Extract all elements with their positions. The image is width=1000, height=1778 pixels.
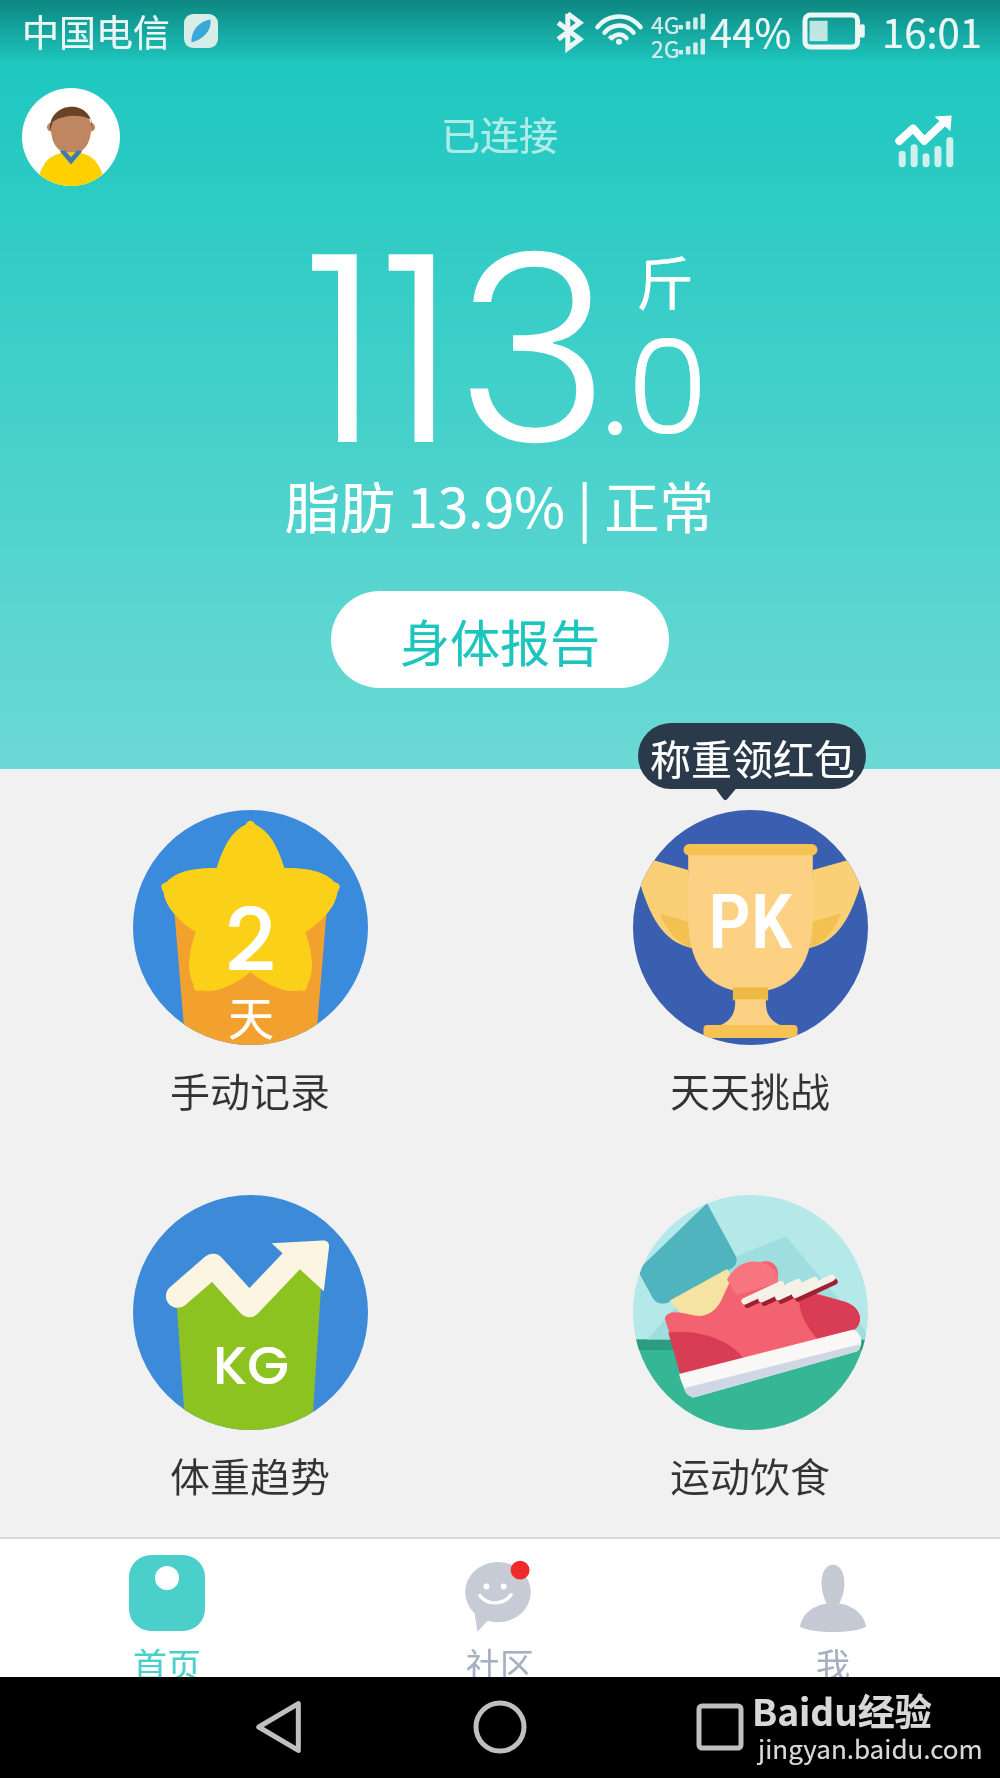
button[interactable]: Home bbox=[450, 1677, 550, 1777]
button[interactable]: Recents bbox=[670, 1677, 770, 1777]
button[interactable]: Profile bbox=[22, 88, 120, 186]
staticText: 2 bbox=[225, 879, 276, 1002]
staticText: 斤 bbox=[636, 238, 695, 322]
button[interactable]: 身体报告 bbox=[331, 591, 669, 688]
staticText: 天天挑战 bbox=[670, 1061, 830, 1119]
staticText: 身体报告 bbox=[400, 604, 600, 676]
staticText: 16:01 bbox=[882, 2, 982, 60]
button[interactable]: 首页 bbox=[57, 1539, 277, 1677]
staticText: 运动饮食 bbox=[670, 1446, 830, 1504]
button[interactable]: 我 bbox=[723, 1539, 943, 1677]
staticText: 称重领红包 bbox=[650, 727, 855, 786]
staticText: PK bbox=[708, 877, 793, 966]
button[interactable]: PK bbox=[628, 810, 872, 1119]
staticText: 4G bbox=[651, 7, 680, 40]
staticText: 首页 bbox=[133, 1639, 201, 1688]
button[interactable]: 社区 bbox=[390, 1539, 610, 1677]
staticText: 社区 bbox=[466, 1639, 534, 1688]
button[interactable]: 称重领红包 bbox=[638, 723, 866, 789]
staticText: 113 bbox=[304, 167, 611, 534]
button[interactable]: Back bbox=[229, 1677, 329, 1777]
staticText: 天 bbox=[228, 982, 274, 1045]
staticText: 44% bbox=[710, 2, 792, 60]
staticText: 2G bbox=[651, 31, 680, 64]
staticText: 手动记录 bbox=[170, 1061, 330, 1119]
staticText: .0 bbox=[603, 295, 709, 480]
staticText: 我 bbox=[816, 1639, 850, 1688]
staticText: 脂肪 13.9% | 正常 bbox=[285, 464, 715, 544]
button[interactable]: KG bbox=[128, 1195, 372, 1504]
button[interactable]: Weight trends bbox=[884, 100, 966, 182]
staticText: 体重趋势 bbox=[170, 1446, 330, 1504]
staticText: Baidu经验 bbox=[752, 1683, 932, 1737]
staticText: 中国电信 bbox=[22, 4, 170, 58]
staticText: jingyan.baidu.com bbox=[758, 1729, 983, 1767]
staticText: 已连接 bbox=[441, 105, 559, 161]
button[interactable]: 运动饮食 bbox=[628, 1195, 872, 1504]
button[interactable]: 2 bbox=[128, 810, 372, 1119]
staticText: KG bbox=[213, 1327, 289, 1403]
